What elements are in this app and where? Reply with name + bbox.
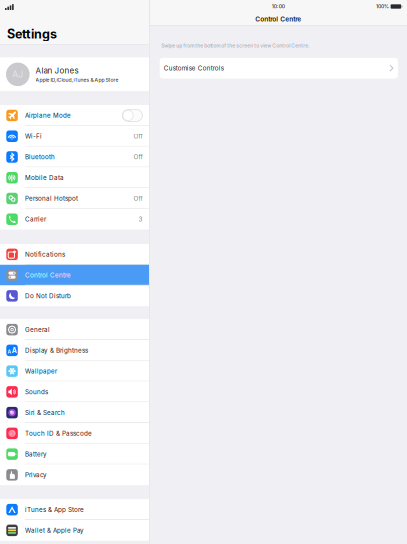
button[interactable]: Airplane Mode [0,105,149,126]
button[interactable]: A [0,340,149,361]
staticText: Privacy [25,471,47,479]
staticText: Do Not Disturb [25,292,71,300]
staticText: A [7,349,11,355]
staticText: Battery [25,450,47,458]
staticText: Off [133,195,142,202]
staticText: Alan Jones [36,66,79,75]
button[interactable]: General [0,319,149,340]
button[interactable]: AJ [0,58,149,91]
staticText: Off [133,132,142,140]
staticText: Wi-Fi [25,132,42,140]
button[interactable]: Personal Hotspot [0,188,149,209]
staticText: Wallet & Apple Pay [25,527,84,534]
staticText: Display & Brightness [25,347,88,354]
button[interactable]: Privacy [0,464,149,485]
staticText: Mobile Data [25,174,64,181]
button[interactable]: Notifications [0,244,149,265]
staticText: Bluetooth [25,153,55,161]
button[interactable]: iTunes & App Store [0,499,149,520]
button[interactable]: Wi-Fi [0,126,149,147]
staticText: Notifications [25,251,65,258]
staticText: Swipe up from the bottom of the screen t… [161,43,309,49]
staticText: 3 [138,215,142,223]
button[interactable]: Control Centre [0,265,149,286]
staticText: AJ [12,69,23,79]
button[interactable]: Wallpaper [0,361,149,382]
staticText: Apple ID, iCloud, iTunes & App Store [36,77,119,83]
staticText: Airplane Mode [25,112,71,119]
staticText: iTunes & App Store [25,506,84,513]
staticText: A [12,346,17,355]
button[interactable]: Carrier [0,209,149,230]
button[interactable]: Siri & Search [0,402,149,423]
staticText: Carrier [25,215,46,223]
staticText: Customise Controls [164,64,224,72]
staticText: General [25,326,50,333]
staticText: Sounds [25,388,48,396]
staticText: Off [133,153,142,161]
button[interactable]: Customise Controls [160,58,398,79]
button[interactable]: Touch ID & Passcode [0,423,149,444]
button[interactable]: Sounds [0,381,149,402]
staticText: 100% [376,3,389,9]
button[interactable]: Wallet & Apple Pay [0,520,149,541]
staticText: Wallpaper [25,367,57,375]
staticText: Control Centre [255,15,301,23]
staticText: 10:00 [272,3,285,9]
staticText: Siri & Search [25,409,65,416]
button[interactable]: Battery [0,444,149,465]
button[interactable]: Bluetooth [0,147,149,167]
button[interactable]: Mobile Data [0,167,149,188]
staticText: Control Centre [25,271,71,279]
button[interactable]: Do Not Disturb [0,285,149,306]
staticText: Personal Hotspot [25,195,78,202]
staticText: Touch ID & Passcode [25,430,92,437]
staticText: Settings [7,26,57,41]
